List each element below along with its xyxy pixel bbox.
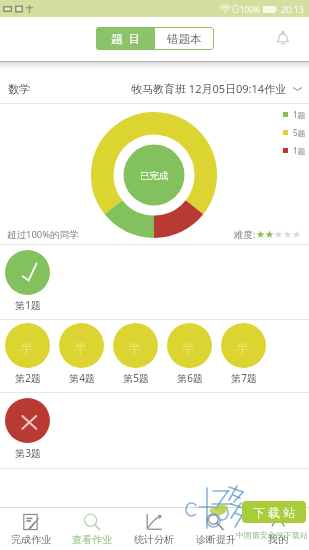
staticText: 1题 [293, 109, 306, 120]
staticText: 半 [236, 340, 249, 356]
staticText: 题 目 [111, 31, 140, 47]
staticText: 第6题 [177, 371, 203, 385]
staticText: 难度: [234, 228, 256, 241]
staticText: 下 载 站 [253, 504, 296, 520]
staticText: 第5题 [123, 371, 149, 385]
staticText: 超过100%的同学 [7, 228, 79, 241]
staticText: 统计分析 [134, 533, 174, 546]
button[interactable]: 半 [5, 323, 50, 385]
button[interactable]: 完成作业 [0, 508, 61, 550]
button[interactable]: 第3题 [5, 398, 50, 460]
button[interactable]: 第1题 [5, 250, 50, 312]
button[interactable]: 错题本 [155, 27, 214, 50]
staticText: 第2题 [15, 371, 41, 385]
staticText: 半 [20, 340, 33, 356]
staticText: 已完成 [140, 170, 169, 182]
staticText: 20:13 [281, 3, 305, 15]
staticText: 完成作业 [11, 533, 51, 546]
staticText: 牧马教育班 12月05日09:14作业 [131, 81, 287, 96]
staticText: 半 [74, 340, 87, 356]
staticText: 1题 [293, 145, 306, 156]
staticText: 半 [182, 340, 195, 356]
button[interactable]: 半 [59, 323, 104, 385]
button[interactable]: Notifications [270, 25, 296, 51]
staticText: 中国最安全的下载站 [236, 530, 308, 540]
button[interactable]: 诊断提升 [185, 508, 247, 550]
staticText: 第1题 [15, 298, 41, 312]
button[interactable]: 我的 [247, 508, 309, 550]
button[interactable]: 半 [113, 323, 158, 385]
staticText: 诊断提升 [196, 533, 236, 546]
staticText: 错题本 [167, 32, 202, 46]
staticText: 5题 [293, 127, 306, 138]
staticText: 第7题 [231, 371, 257, 385]
button[interactable]: 查看作业 [61, 508, 123, 550]
button[interactable]: 统计分析 [123, 508, 185, 550]
staticText: 100% [240, 4, 261, 15]
staticText: 查看作业 [72, 533, 112, 546]
staticText: 半 [128, 340, 141, 356]
button[interactable]: 题 目 [96, 27, 155, 50]
button[interactable]: 半 [221, 323, 266, 385]
staticText: 数学 [8, 82, 30, 96]
staticText: 第4题 [69, 371, 95, 385]
button[interactable]: 半 [167, 323, 212, 385]
staticText: 我的 [268, 533, 288, 546]
staticText: 第3题 [15, 446, 41, 460]
button[interactable]: 牧马教育班 12月05日09:14作业 [131, 81, 303, 96]
